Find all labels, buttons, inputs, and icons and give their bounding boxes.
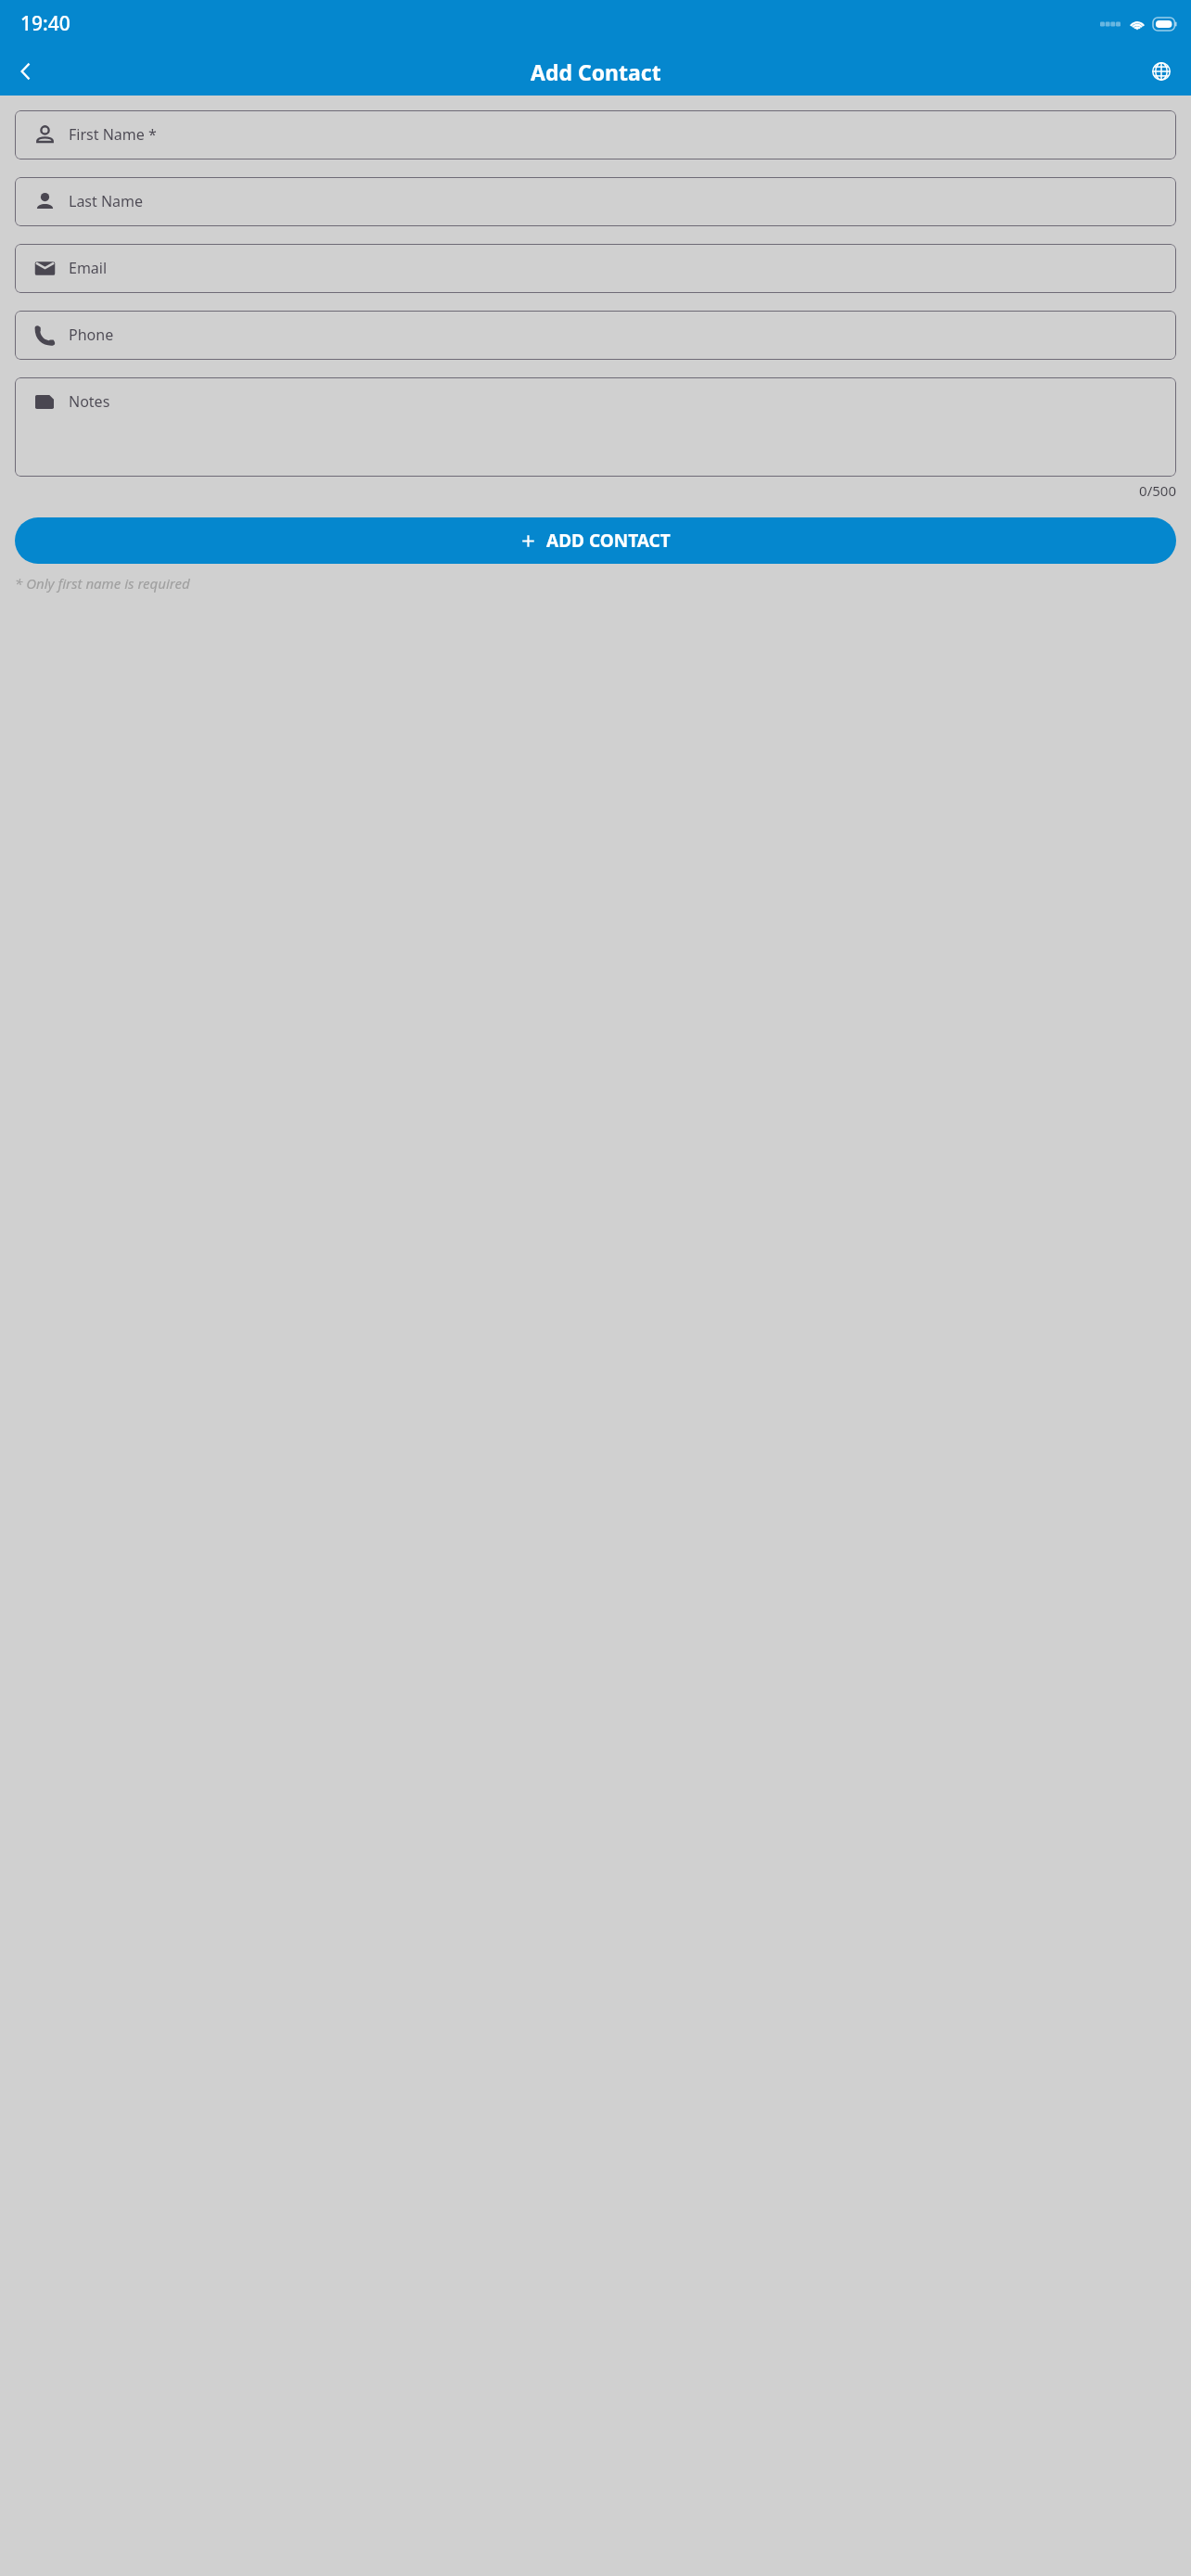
- staticText: ADD CONTACT: [546, 529, 671, 553]
- staticText: 19:40: [20, 10, 70, 37]
- staticText: First Name *: [69, 124, 157, 145]
- button[interactable]: Last Name: [15, 177, 1176, 226]
- button[interactable]: Notes: [15, 377, 1176, 477]
- button[interactable]: First Name *: [15, 110, 1176, 159]
- button[interactable]: Phone: [15, 311, 1176, 360]
- staticText: Phone: [69, 325, 114, 345]
- staticText: 0/500: [15, 481, 1176, 500]
- staticText: * Only first name is required: [15, 574, 190, 593]
- button[interactable]: Email: [15, 244, 1176, 293]
- button[interactable]: Language: [1139, 49, 1184, 94]
- button[interactable]: Back: [4, 49, 48, 94]
- staticText: Email: [69, 258, 108, 278]
- staticText: Add Contact: [531, 57, 661, 86]
- button[interactable]: ADD CONTACT: [15, 517, 1176, 564]
- staticText: Last Name: [69, 191, 144, 211]
- staticText: Notes: [69, 391, 110, 412]
